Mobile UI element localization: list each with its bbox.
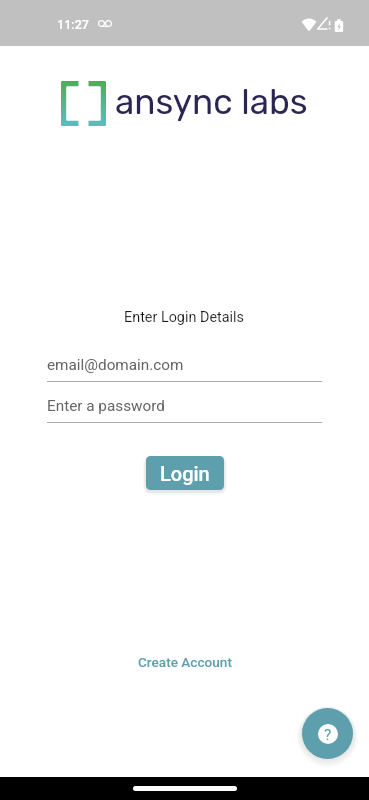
staticText: ansync labs — [115, 81, 308, 122]
staticText: Create Account — [138, 654, 232, 670]
button[interactable]: Create Account — [130, 648, 240, 676]
staticText: Login — [160, 462, 210, 485]
button[interactable]: Enter a password — [47, 397, 322, 415]
staticText: Enter Login Details — [124, 309, 245, 326]
button[interactable]: email@domain.com — [47, 356, 322, 374]
button[interactable]: Help — [302, 708, 353, 759]
staticText: 11:27 — [57, 17, 89, 32]
staticText: ? — [324, 726, 332, 744]
staticText: email@domain.com — [47, 356, 184, 374]
button[interactable]: Login — [146, 456, 224, 490]
staticText: Enter a password — [47, 397, 165, 415]
